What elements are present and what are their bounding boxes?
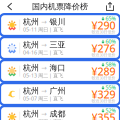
staticText: → [41,64,47,72]
staticText: 较近30日低价 [91,75,115,80]
staticText: 杭州 [23,86,39,96]
staticText: ¥290 [91,18,115,32]
staticText: 较近30日低价 [91,98,115,103]
button[interactable]: 杭州 [0,106,120,120]
staticText: → [41,18,47,26]
staticText: → [41,110,47,118]
button[interactable]: 杭州 [0,83,120,105]
staticText: 杭州 [23,63,39,73]
staticText: → [41,87,47,95]
staticText: 国内机票降价榜 [32,2,88,11]
button[interactable]: Share [100,0,120,13]
staticText: ¥329 [91,87,115,101]
staticText: ¥276 [91,41,115,55]
button[interactable]: 杭州 [0,14,120,36]
staticText: 05-11 周日 | 直飞 [23,26,63,33]
button[interactable]: Back [0,0,20,13]
button[interactable]: 杭州 [0,60,120,82]
staticText: 较近30日低价 [91,29,115,34]
staticText: 05-09 周五 | 直飞 [23,118,63,120]
staticText: 65% [105,15,115,22]
staticText: 杭州 [23,109,39,119]
staticText: 52% [105,107,115,114]
staticText: 杭州 [23,40,39,50]
staticText: 60% [105,38,115,45]
staticText: 广州 [49,86,65,96]
staticText: ¥289 [91,64,115,78]
staticText: 银川 [49,17,65,27]
staticText: 05-07 周三 | 直飞 [23,95,63,102]
staticText: 04-16 周二 | 直飞 [23,49,63,56]
staticText: 成都 [49,109,65,119]
staticText: 较近30日低价 [91,52,115,57]
staticText: 05-13 周二 | 直飞 [23,72,63,79]
staticText: → [41,41,47,49]
staticText: ¥355 [91,110,115,120]
staticText: 杭州 [23,17,39,27]
button[interactable]: 杭州 [0,37,120,59]
staticText: 55% [105,84,115,91]
staticText: 三亚 [49,40,65,50]
staticText: 海口 [49,63,65,73]
staticText: 58% [105,61,115,68]
